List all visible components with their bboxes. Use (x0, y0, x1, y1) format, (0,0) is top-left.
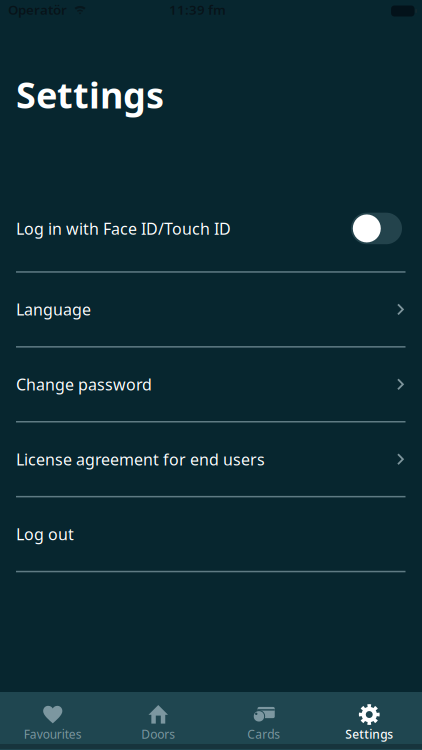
button[interactable]: Change password (0, 348, 422, 422)
button[interactable]: Doors (105, 702, 211, 742)
staticText: Language (16, 299, 91, 320)
button[interactable]: Log out (0, 497, 422, 572)
staticText: Change password (16, 374, 152, 395)
button[interactable]: Cards (211, 702, 316, 742)
button[interactable]: Favourites (0, 702, 105, 742)
staticText: Settings (16, 71, 164, 118)
staticText: Favourites (24, 726, 82, 742)
button[interactable]: Log in with Face ID/Touch ID (351, 213, 402, 244)
staticText: 11:39 fm (169, 1, 226, 18)
staticText: Settings (345, 726, 393, 742)
staticText: Log in with Face ID/Touch ID (16, 218, 231, 239)
staticText: Doors (141, 726, 175, 742)
button[interactable]: Language (0, 273, 422, 348)
button[interactable]: Settings (316, 702, 422, 742)
button[interactable]: License agreement for end users (0, 422, 422, 497)
staticText: Operatör (8, 1, 67, 18)
staticText: Cards (247, 726, 280, 742)
staticText: License agreement for end users (16, 449, 265, 470)
staticText: Log out (16, 523, 74, 545)
